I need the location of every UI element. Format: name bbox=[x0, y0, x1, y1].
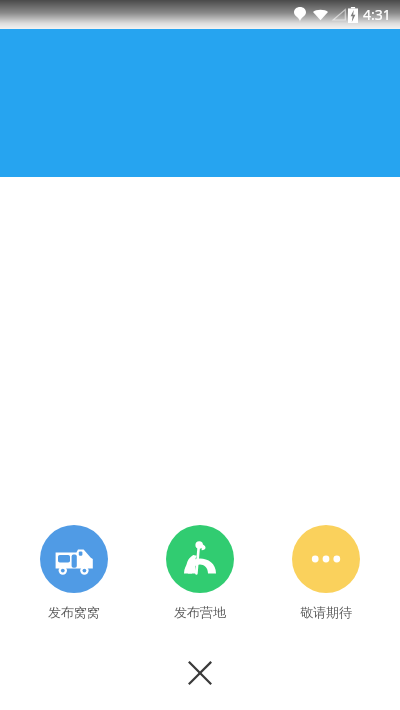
staticText: 发布营地 bbox=[174, 604, 226, 620]
button[interactable]: 发布窝窝 bbox=[22, 525, 126, 620]
staticText: 发布窝窝 bbox=[48, 604, 100, 620]
button[interactable]: Close bbox=[0, 636, 400, 710]
staticText: 4:31 bbox=[363, 5, 391, 24]
button[interactable]: 敬请期待 bbox=[274, 525, 378, 620]
staticText: 敬请期待 bbox=[300, 604, 352, 620]
button[interactable]: 发布营地 bbox=[148, 525, 252, 620]
